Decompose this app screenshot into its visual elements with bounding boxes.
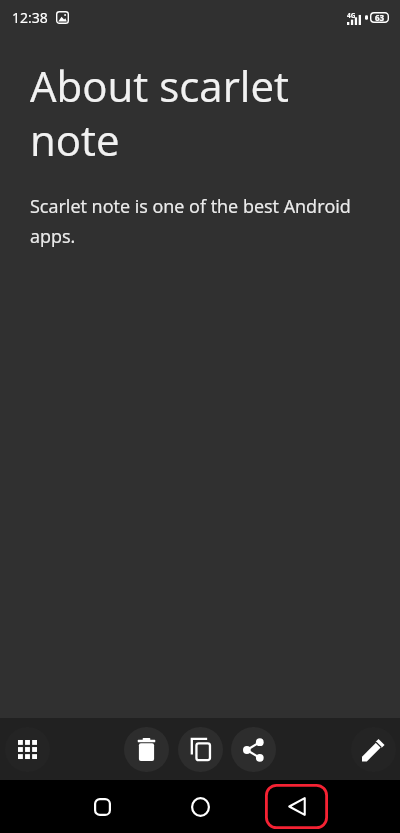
button[interactable]: Grid view xyxy=(5,727,50,772)
staticText: Scarlet note is one of the best Android … xyxy=(30,190,370,250)
staticText: 12:38 xyxy=(12,8,48,27)
button[interactable]: Delete xyxy=(124,727,169,772)
button[interactable]: Edit xyxy=(351,727,396,772)
staticText: About scarlet note xyxy=(30,60,300,168)
button[interactable]: Home xyxy=(168,785,232,829)
button[interactable]: Copy xyxy=(178,727,223,772)
button[interactable]: Back xyxy=(265,784,328,829)
staticText: 63 xyxy=(375,12,385,23)
button[interactable]: Recents xyxy=(70,785,134,829)
staticText: 4G xyxy=(347,11,356,20)
button[interactable]: Share xyxy=(231,727,276,772)
